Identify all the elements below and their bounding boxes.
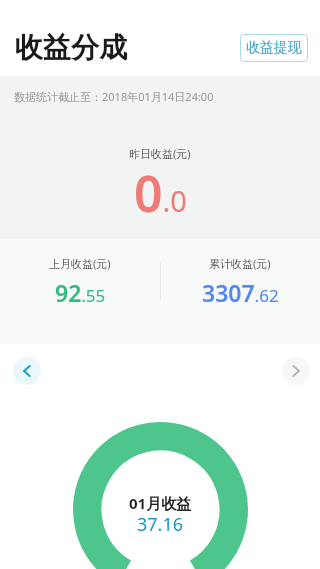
button[interactable]: Previous month: [13, 357, 41, 385]
staticText: 收益分成: [15, 30, 127, 65]
staticText: 累计收益(元): [209, 256, 271, 271]
staticText: 0.0: [134, 159, 187, 227]
staticText: 01月收益: [129, 493, 192, 513]
staticText: 昨日收益(元): [129, 146, 191, 161]
staticText: 37.16: [137, 512, 184, 537]
button[interactable]: 收益提现: [240, 34, 308, 62]
staticText: 数据统计截止至：2018年01月14日24:00: [14, 89, 214, 104]
staticText: 收益提现: [246, 39, 302, 57]
staticText: 92.55: [55, 277, 106, 308]
button[interactable]: Next month: [282, 357, 310, 385]
staticText: 上月收益(元): [49, 256, 111, 271]
staticText: 3307.62: [202, 277, 279, 308]
